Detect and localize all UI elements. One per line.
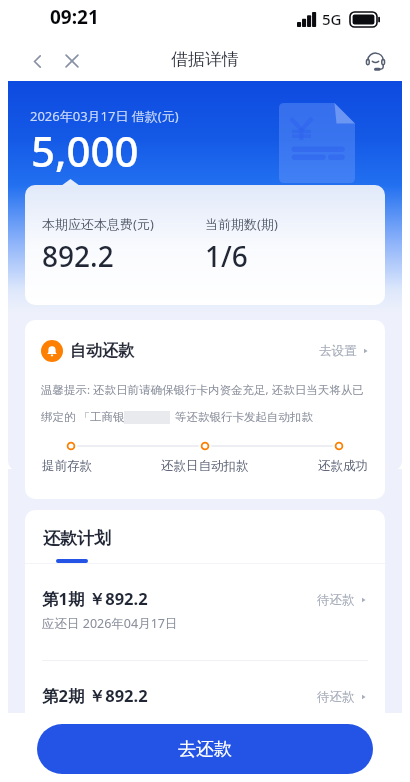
staticText: 5G bbox=[322, 9, 342, 29]
staticText: 提前存款 bbox=[42, 458, 92, 474]
staticText: 应还日 2026年04月17日 bbox=[42, 615, 178, 632]
button[interactable]: 自动还款 bbox=[25, 320, 385, 362]
staticText: 5,000 bbox=[31, 122, 139, 179]
staticText: 第2期 ￥892.2 bbox=[42, 684, 148, 707]
staticText: 当前期数(期) bbox=[205, 215, 278, 233]
staticText: 09:21 bbox=[50, 4, 99, 30]
staticText: 去还款 bbox=[178, 738, 232, 761]
button[interactable]: Close bbox=[59, 48, 85, 74]
button[interactable]: 第1期 ￥892.2 bbox=[25, 564, 385, 660]
staticText: 去设置 bbox=[319, 343, 357, 359]
button[interactable]: Customer service bbox=[361, 47, 389, 75]
staticText: 还款计划 bbox=[43, 528, 111, 549]
staticText: 等还款银行卡发起自动扣款 bbox=[175, 410, 313, 424]
staticText: 2026年03月17日 借款(元) bbox=[30, 107, 179, 125]
staticText: 借据详情 bbox=[171, 49, 239, 70]
button[interactable]: 去还款 bbox=[37, 724, 373, 774]
staticText: 绑定的 「工商银 bbox=[41, 409, 125, 425]
staticText: 还款日自动扣款 bbox=[161, 458, 249, 474]
staticText: 自动还款 bbox=[70, 341, 134, 361]
button[interactable]: 第2期 ￥892.2 bbox=[25, 661, 385, 713]
button[interactable]: Back bbox=[24, 48, 50, 74]
staticText: 第1期 ￥892.2 bbox=[42, 587, 148, 610]
staticText: 本期应还本息费(元) bbox=[42, 215, 154, 233]
staticText: 待还款 bbox=[317, 592, 355, 608]
staticText: 待还款 bbox=[317, 689, 355, 705]
staticText: 1/6 bbox=[205, 237, 248, 275]
staticText: 还款成功 bbox=[318, 458, 368, 474]
staticText: 温馨提示: 还款日前请确保银行卡内资金充足, 还款日当天将从已 bbox=[41, 382, 364, 398]
staticText: 892.2 bbox=[42, 237, 114, 275]
